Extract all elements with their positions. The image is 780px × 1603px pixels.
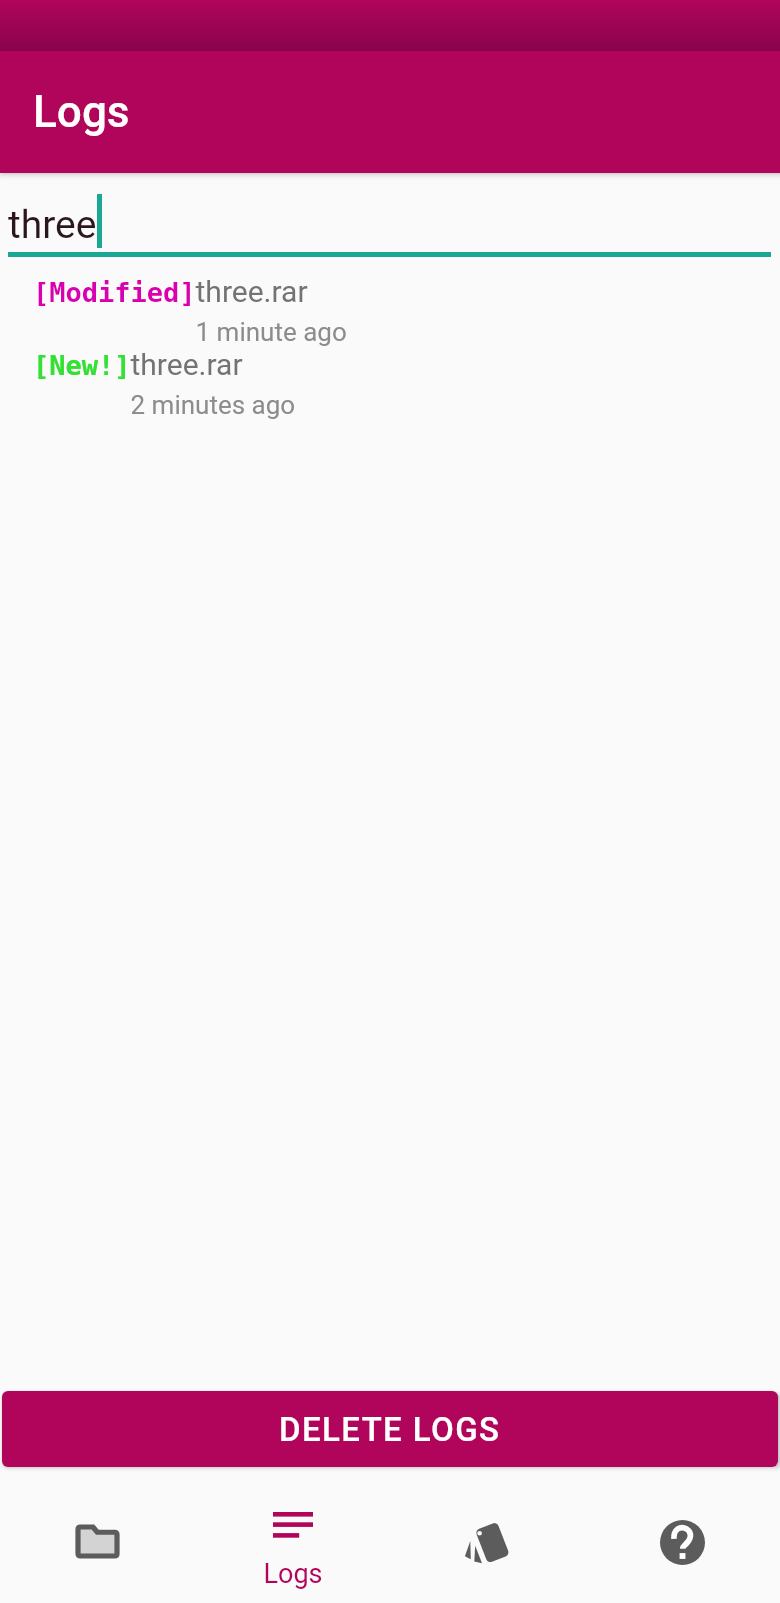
button[interactable]: Help [585, 1478, 780, 1603]
button[interactable]: Logs [195, 1478, 390, 1603]
staticText: Logs [33, 86, 130, 138]
staticText: [New!]three.rar 2 minutes ago [33, 347, 296, 420]
button[interactable]: [New!]three.rar 2 minutes ago [0, 347, 780, 420]
button[interactable]: three [0, 173, 780, 257]
button[interactable]: Files [0, 1478, 195, 1603]
staticText: Logs [263, 1558, 323, 1590]
staticText: [Modified]three.rar 1 minute ago [33, 274, 347, 347]
button[interactable]: DELETE LOGS [2, 1391, 778, 1467]
staticText: three [8, 202, 97, 248]
button[interactable]: Themes [390, 1478, 585, 1603]
staticText: DELETE LOGS [279, 1410, 501, 1449]
button[interactable]: [Modified]three.rar 1 minute ago [0, 274, 780, 347]
